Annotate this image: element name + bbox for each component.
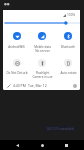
button[interactable]: Flashlight Camera in use (29, 59, 55, 79)
staticText: Tue, Mar 12 (28, 83, 47, 88)
staticText: 4:40 PM (13, 83, 26, 88)
staticText: Flashlight Camera in use (32, 71, 53, 79)
staticText: GLP-2 FS unavailable (47, 127, 75, 131)
button[interactable]: Auto-rotate (55, 59, 80, 75)
button[interactable]: Recent apps (61, 140, 72, 150)
staticText: AndroidWifi (8, 45, 25, 49)
staticText: Do Not Disturb (6, 71, 28, 75)
staticText: Auto-rotate (60, 71, 77, 75)
button[interactable]: Do Not Disturb (4, 59, 29, 75)
button[interactable]: Settings (71, 82, 78, 89)
staticText: Bluetooth (61, 45, 75, 49)
button[interactable]: Home (37, 140, 48, 150)
button[interactable]: Mobile data No service (29, 32, 55, 53)
button[interactable]: Edit tiles (5, 82, 12, 89)
button[interactable]: AndroidWifi (4, 32, 29, 49)
staticText: ●● (4, 2, 10, 6)
button[interactable]: Bluetooth (55, 32, 80, 49)
staticText: 100% (67, 13, 76, 17)
button[interactable]: Back (12, 140, 23, 150)
staticText: Mobile data No service (34, 45, 51, 53)
